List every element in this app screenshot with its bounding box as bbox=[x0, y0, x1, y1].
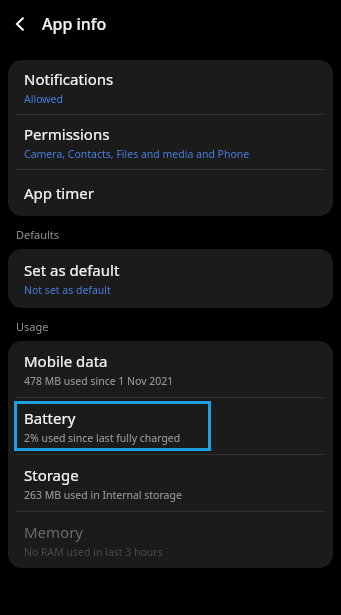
staticText: 263 MB used in Internal storage bbox=[24, 488, 182, 502]
staticText: Memory bbox=[24, 522, 84, 542]
staticText: 478 MB used since 1 Nov 2021 bbox=[24, 374, 174, 388]
button[interactable]: Storage bbox=[8, 455, 333, 511]
button[interactable]: Battery bbox=[8, 398, 333, 454]
staticText: Storage bbox=[24, 465, 79, 485]
staticText: Set as default bbox=[24, 260, 120, 280]
staticText: Notifications bbox=[24, 69, 114, 89]
staticText: Allowed bbox=[24, 92, 63, 106]
button[interactable]: Notifications bbox=[8, 60, 333, 114]
staticText: 2% used since last fully charged bbox=[24, 431, 181, 445]
staticText: Mobile data bbox=[24, 351, 108, 371]
staticText: Defaults bbox=[16, 227, 60, 242]
button[interactable]: Set as default bbox=[8, 249, 333, 308]
staticText: App timer bbox=[24, 183, 94, 203]
staticText: No RAM used in last 3 hours bbox=[24, 545, 163, 559]
staticText: Camera, Contacts, Files and media and Ph… bbox=[24, 147, 250, 161]
staticText: Battery bbox=[24, 408, 76, 428]
button[interactable]: Mobile data bbox=[8, 341, 333, 397]
staticText: Permissions bbox=[24, 124, 110, 144]
button[interactable]: App timer bbox=[8, 170, 333, 216]
staticText: Not set as default bbox=[24, 283, 111, 297]
button[interactable]: Back bbox=[0, 4, 40, 44]
button[interactable]: Memory bbox=[8, 512, 333, 568]
staticText: App info bbox=[42, 13, 107, 35]
button[interactable]: Permissions bbox=[8, 115, 333, 169]
staticText: Usage bbox=[16, 319, 49, 334]
